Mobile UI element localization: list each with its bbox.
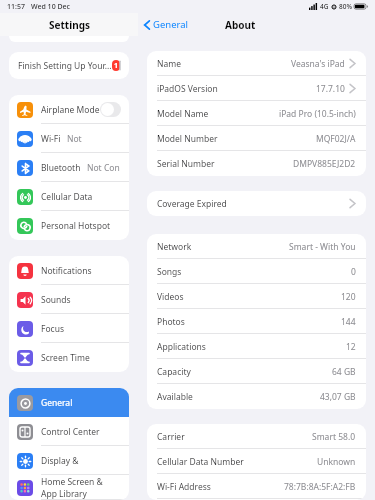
staticText: About: [225, 18, 256, 32]
staticText: Veasna's iPad: [291, 58, 345, 70]
staticText: 11:57: [7, 2, 25, 12]
staticText: 0: [351, 266, 356, 278]
staticText: Serial Number: [157, 158, 215, 170]
button[interactable]: Model Number: [147, 126, 366, 151]
staticText: Name: [157, 58, 181, 70]
staticText: Applications: [157, 341, 206, 353]
button[interactable]: Cellular Data Number: [147, 449, 366, 474]
button[interactable]: Control Center: [9, 417, 129, 446]
staticText: App Library: [41, 488, 87, 500]
button[interactable]: Wi-Fi Address: [147, 474, 366, 499]
button[interactable]: General: [9, 388, 129, 417]
staticText: General: [41, 397, 73, 409]
staticText: Focus: [41, 323, 64, 335]
staticText: Airplane Mode: [41, 104, 100, 116]
staticText: iPadOS Version: [157, 83, 218, 95]
staticText: DMPV885EJ2D2: [293, 158, 356, 170]
staticText: Coverage Expired: [157, 198, 227, 210]
staticText: Model Name: [157, 108, 209, 120]
staticText: Songs: [157, 266, 182, 278]
staticText: Finish Setting Up Your...: [18, 60, 112, 72]
staticText: Network: [157, 241, 192, 253]
button[interactable]: Model Name: [147, 101, 366, 126]
other: Back: [144, 20, 150, 30]
button[interactable]: Coverage Expired: [147, 191, 366, 216]
button[interactable]: Screen Time: [9, 343, 129, 372]
staticText: 4G: [320, 2, 329, 11]
button[interactable]: Airplane Mode: [9, 95, 129, 124]
staticText: Wed 10 Dec: [31, 2, 71, 12]
staticText: Photos: [157, 316, 185, 328]
button[interactable]: Back: [144, 18, 189, 31]
staticText: 43,07 GB: [320, 391, 356, 403]
staticText: Notifications: [41, 265, 92, 277]
staticText: 144: [341, 316, 356, 328]
button[interactable]: Photos: [147, 309, 366, 334]
staticText: Model Number: [157, 133, 218, 145]
button[interactable]: Home Screen &: [9, 475, 129, 500]
staticText: Available: [157, 391, 193, 403]
staticText: Smart 58.0: [312, 431, 356, 443]
staticText: 1: [114, 61, 119, 71]
button[interactable]: Display & Brightness: [9, 446, 129, 475]
staticText: 12: [346, 341, 356, 353]
staticText: 78:7B:8A:5F:A2:FB: [284, 481, 356, 493]
staticText: 64 GB: [332, 366, 356, 378]
button[interactable]: Name: [147, 51, 366, 76]
staticText: Sounds: [41, 294, 71, 306]
button[interactable]: Notifications: [9, 256, 129, 285]
button[interactable]: Sounds: [9, 285, 129, 314]
staticText: Carrier: [157, 431, 185, 443]
button[interactable]: Applications: [147, 334, 366, 359]
staticText: Smart - With You: [289, 241, 356, 253]
staticText: Wi-Fi Address: [157, 481, 211, 493]
button[interactable]: Available: [147, 384, 366, 409]
button[interactable]: Focus: [9, 314, 129, 343]
button[interactable]: Capacity: [147, 359, 366, 384]
button[interactable]: Videos: [147, 284, 366, 309]
staticText: 120: [341, 291, 356, 303]
staticText: Settings: [49, 18, 90, 32]
staticText: General: [153, 18, 189, 31]
button[interactable]: Finish Setting Up Your...: [9, 52, 129, 79]
staticText: Bluetooth: [41, 162, 81, 174]
button[interactable]: Songs: [147, 259, 366, 284]
staticText: Not Connected: [87, 162, 121, 174]
staticText: 80%: [339, 2, 352, 11]
staticText: Wi-Fi: [41, 133, 61, 145]
button[interactable]: iPadOS Version: [147, 76, 366, 101]
staticText: Cellular Data: [41, 191, 93, 203]
staticText: Not Connected: [67, 133, 121, 145]
button[interactable]: Cellular Data: [9, 182, 129, 211]
staticText: MQF02J/A: [316, 133, 356, 145]
staticText: Control Center: [41, 426, 100, 438]
staticText: Personal Hotspot: [41, 220, 111, 232]
staticText: Screen Time: [41, 352, 90, 364]
button[interactable]: Network: [147, 234, 366, 259]
staticText: Cellular Data Number: [157, 456, 244, 468]
staticText: iPad Pro (10.5-inch): [279, 108, 356, 120]
button[interactable]: Bluetooth: [9, 153, 129, 182]
button[interactable]: Serial Number: [147, 151, 366, 176]
staticText: Capacity: [157, 366, 191, 378]
staticText: Unknown: [317, 456, 356, 468]
staticText: Display & Brightness: [41, 455, 121, 467]
button[interactable]: Carrier: [147, 424, 366, 449]
button[interactable]: Wi-Fi: [9, 124, 129, 153]
staticText: Videos: [157, 291, 184, 303]
button[interactable]: Personal Hotspot: [9, 211, 129, 240]
staticText: Home Screen &: [41, 476, 103, 488]
staticText: 17.7.10: [316, 83, 345, 95]
